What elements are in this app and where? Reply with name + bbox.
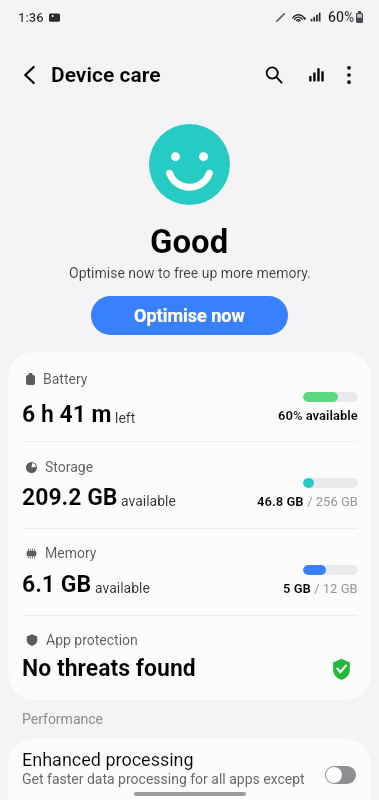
button[interactable]: Navigate up	[0, 52, 46, 98]
staticText: 60% available	[278, 408, 358, 423]
staticText: Performance	[22, 711, 103, 727]
staticText: 209.2 GB	[22, 484, 118, 511]
staticText: Get faster data processing for all apps …	[22, 771, 305, 787]
staticText: 60%	[328, 9, 355, 25]
staticText: Battery	[43, 371, 88, 387]
staticText: / 256 GB	[304, 494, 358, 509]
button[interactable]: Memory	[8, 529, 371, 615]
button[interactable]: Optimise now	[91, 296, 288, 335]
button[interactable]: App protection	[8, 616, 371, 700]
staticText: Optimise now	[134, 305, 245, 326]
button[interactable]: Search	[253, 52, 295, 98]
staticText: 1:36	[18, 10, 44, 25]
button[interactable]: More options	[335, 52, 375, 98]
staticText: No threats found	[22, 655, 196, 682]
button[interactable]: Enhanced processing	[8, 739, 371, 800]
staticText: 5 GB	[283, 581, 311, 596]
staticText: 6.1 GB	[22, 571, 92, 598]
staticText: Storage	[45, 459, 94, 475]
staticText: Good	[150, 222, 229, 261]
staticText: Memory	[45, 545, 97, 561]
staticText: Enhanced processing	[22, 749, 194, 770]
staticText: Optimise now to free up more memory.	[69, 265, 311, 281]
button[interactable]: Enhanced processing toggle	[325, 766, 356, 784]
staticText: available	[95, 580, 150, 596]
staticText: 6 h 41 m	[22, 401, 112, 428]
button[interactable]: Storage	[8, 442, 371, 528]
staticText: Device care	[51, 63, 161, 88]
staticText: / 12 GB	[311, 581, 358, 596]
button[interactable]: Battery	[8, 352, 371, 441]
button[interactable]: Usage statistics	[295, 52, 335, 98]
staticText: App protection	[46, 632, 138, 648]
staticText: left	[115, 410, 136, 426]
staticText: available	[121, 493, 176, 509]
staticText: 46.8 GB	[257, 494, 304, 509]
